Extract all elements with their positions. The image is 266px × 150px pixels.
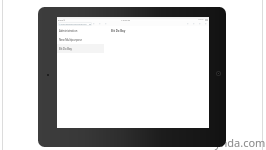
button[interactable]: Back: [187, 23, 189, 25]
staticText: Bit Do Bay: [59, 47, 72, 51]
button[interactable]: mail.google.com/mail/u/0: [58, 22, 92, 26]
button[interactable]: Tabs: [105, 23, 107, 25]
staticText: mail.google.com/mail/u/0: [61, 23, 87, 26]
button[interactable]: Share: [93, 23, 95, 25]
button[interactable]: Administration: [57, 26, 104, 35]
button[interactable]: More: [205, 23, 207, 25]
staticText: Bit Do Bay: [111, 29, 126, 33]
staticText: New Multipurpose: [59, 38, 82, 42]
staticText: 1:04 PM: [121, 18, 130, 21]
button[interactable]: Refresh: [199, 23, 201, 25]
staticText: Administration: [59, 29, 78, 33]
button[interactable]: Bookmarks: [99, 23, 101, 25]
staticText: iPad ▾: [58, 18, 65, 21]
button[interactable]: Home: [216, 71, 221, 76]
staticText: 100%: [198, 18, 204, 21]
button[interactable]: Forward: [193, 23, 195, 25]
button[interactable]: New Multipurpose: [57, 35, 104, 44]
button[interactable]: Bit Do Bay: [57, 44, 104, 53]
staticText: lynda.com: [212, 135, 266, 150]
